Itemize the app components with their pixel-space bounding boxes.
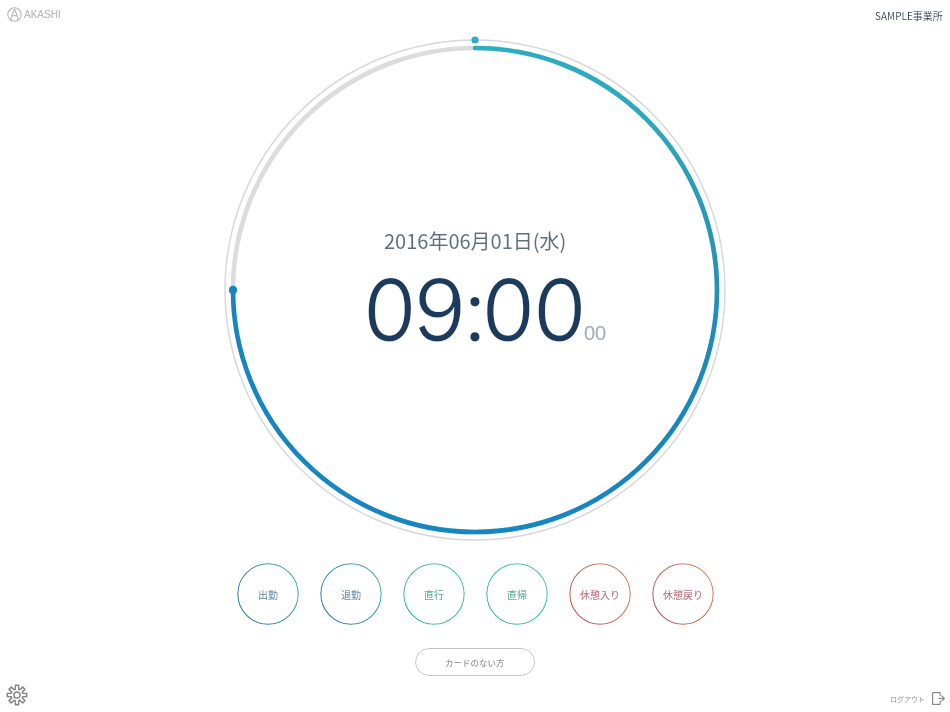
button[interactable]: AKASHI home	[7, 7, 61, 22]
button[interactable]: 休憩戻り	[652, 563, 714, 625]
staticText: 直行	[424, 587, 444, 601]
staticText: 直帰	[507, 587, 527, 601]
staticText: 出勤	[258, 587, 278, 601]
button[interactable]: 出勤	[237, 563, 299, 625]
staticText: ログアウト	[890, 694, 925, 704]
staticText: AKASHI	[24, 9, 61, 20]
button[interactable]: 退勤	[320, 563, 382, 625]
staticText: 09:00	[364, 255, 586, 363]
staticText: 退勤	[341, 587, 361, 601]
button[interactable]: カードのない方	[415, 648, 535, 676]
button[interactable]: 休憩入り	[569, 563, 631, 625]
button[interactable]: Log out	[890, 692, 945, 705]
button[interactable]: Settings	[4, 682, 29, 707]
staticText: 休憩入り	[580, 587, 620, 601]
button[interactable]: 直行	[403, 563, 465, 625]
staticText: 00	[584, 322, 607, 344]
staticText: 2016年06月01日(水)	[384, 226, 567, 255]
staticText: 休憩戻り	[663, 587, 703, 601]
staticText: SAMPLE事業所	[875, 8, 943, 22]
staticText: カードのない方	[445, 656, 505, 668]
button[interactable]: 直帰	[486, 563, 548, 625]
